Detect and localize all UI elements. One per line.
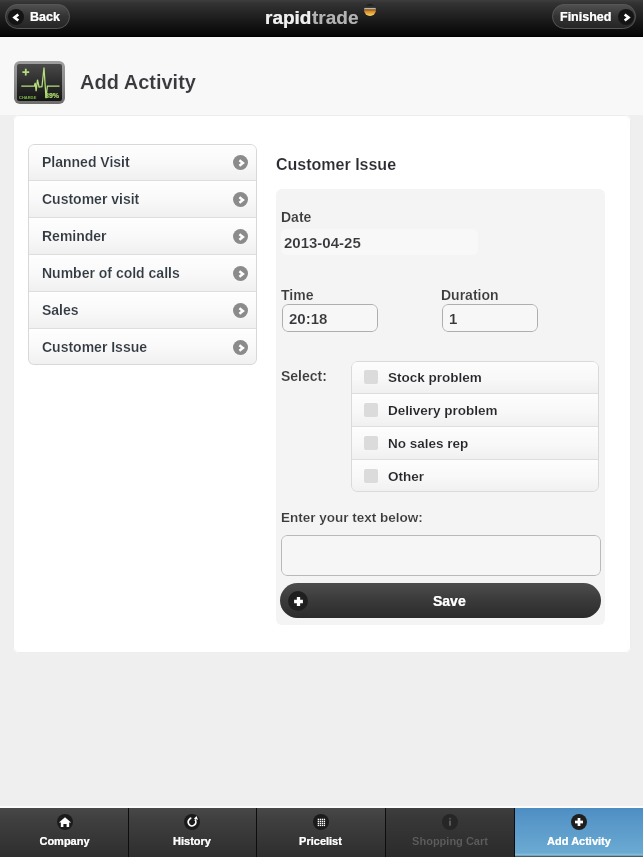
staticText: Add Activity (80, 71, 196, 93)
staticText: Pricelist (299, 835, 342, 847)
staticText: rapid (265, 7, 312, 28)
staticText: Sales (42, 302, 79, 318)
button[interactable]: Customer visit (28, 181, 257, 217)
button[interactable]: Customer Issue (28, 329, 257, 365)
button[interactable]: Other (351, 460, 599, 492)
staticText: Planned Visit (42, 154, 130, 170)
staticText: CHARGE (19, 95, 37, 99)
button[interactable]: Sales (28, 292, 257, 328)
button[interactable] (281, 535, 601, 576)
staticText: No sales rep (388, 436, 469, 451)
staticText: Enter your text below: (281, 510, 423, 525)
staticText: Save (433, 593, 466, 609)
button[interactable]: Delivery problem (351, 394, 599, 426)
button[interactable]: Pricelist (256, 808, 385, 857)
staticText: Reminder (42, 228, 107, 244)
staticText: Company (39, 835, 90, 847)
button[interactable]: Back (5, 4, 70, 29)
staticText: 89% (45, 92, 60, 100)
other: Add Activity (571, 814, 587, 830)
staticText: Select: (281, 368, 327, 384)
other: History (184, 814, 200, 830)
staticText: 1 (449, 310, 458, 327)
staticText: trade (312, 7, 359, 28)
staticText: Number of cold calls (42, 265, 180, 281)
button[interactable]: Stock problem (351, 361, 599, 393)
button[interactable]: Planned Visit (28, 144, 257, 180)
staticText: 2013-04-25 (284, 234, 361, 251)
staticText: Time (281, 287, 314, 303)
button[interactable]: 20:18 (282, 304, 378, 332)
staticText: 20:18 (289, 310, 328, 327)
button[interactable]: No sales rep (351, 427, 599, 459)
button[interactable]: 2013-04-25 (281, 229, 478, 255)
button[interactable]: Finished (552, 4, 636, 29)
staticText: Customer visit (42, 191, 140, 207)
button[interactable]: Number of cold calls (28, 255, 257, 291)
staticText: Back (30, 10, 60, 24)
staticText: Shopping Cart (412, 835, 488, 847)
button[interactable]: History (128, 808, 256, 857)
other: Shopping Cart (442, 814, 458, 830)
staticText: Duration (441, 287, 499, 303)
button[interactable]: Add Activity (514, 808, 643, 857)
staticText: Customer Issue (42, 339, 148, 355)
button[interactable]: Save (280, 583, 601, 618)
staticText: Customer Issue (276, 156, 397, 174)
button[interactable]: Shopping Cart (385, 808, 514, 857)
staticText: Other (388, 469, 425, 484)
staticText: Delivery problem (388, 403, 498, 418)
button[interactable]: Reminder (28, 218, 257, 254)
staticText: Stock problem (388, 370, 482, 385)
staticText: Date (281, 209, 312, 225)
other: Pricelist (313, 814, 329, 830)
other: Company (57, 814, 73, 830)
staticText: History (173, 835, 211, 847)
staticText: Add Activity (547, 835, 611, 847)
button[interactable]: Company (0, 808, 128, 857)
staticText: Finished (560, 10, 612, 24)
button[interactable]: 1 (442, 304, 538, 332)
